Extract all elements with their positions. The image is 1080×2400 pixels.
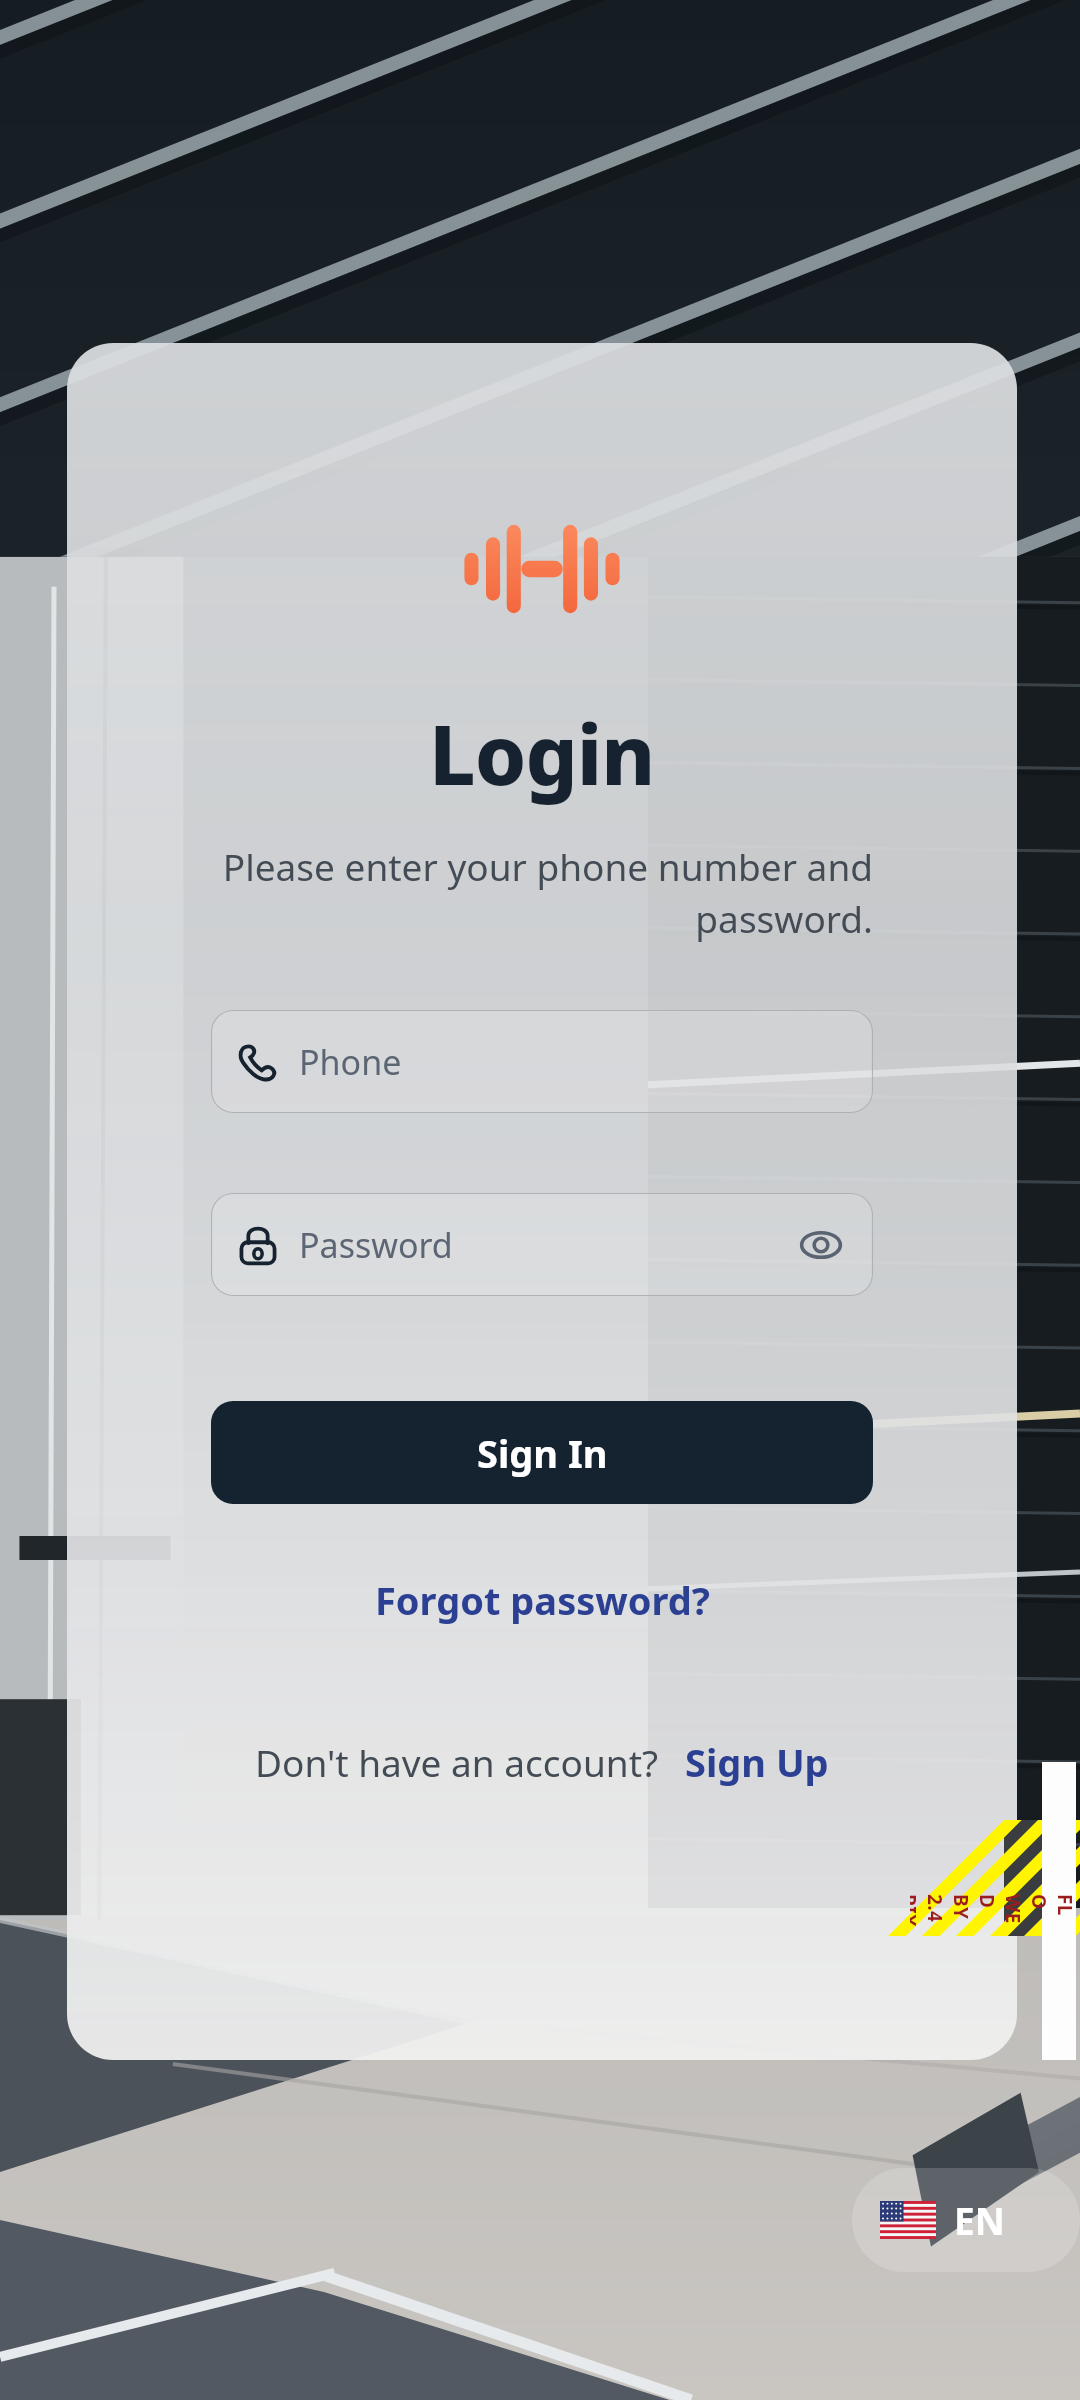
staticText: Please enter your phone number and passw…: [211, 841, 873, 944]
button[interactable]: Show password: [793, 1217, 849, 1273]
staticText: Don't have an account?: [255, 1737, 659, 1787]
staticText: Password: [299, 1222, 453, 1268]
staticText: EN: [954, 2195, 1005, 2245]
staticText: Phone: [299, 1039, 402, 1085]
staticText: RIGHT OVERFLOWED BY 2.4 PIXELS: [910, 1894, 1080, 1928]
staticText: Sign In: [477, 1427, 608, 1479]
button[interactable]: Sign Up: [685, 1736, 829, 1788]
staticText: Login: [429, 697, 655, 809]
button[interactable]: Password: [211, 1193, 873, 1296]
button[interactable]: Forgot password?: [361, 1564, 724, 1636]
button[interactable]: Sign In: [211, 1401, 873, 1504]
button[interactable]: EN: [852, 2168, 1080, 2272]
staticText: Forgot password?: [375, 1574, 710, 1626]
staticText: Sign Up: [685, 1736, 829, 1788]
button[interactable]: Phone: [211, 1010, 873, 1113]
